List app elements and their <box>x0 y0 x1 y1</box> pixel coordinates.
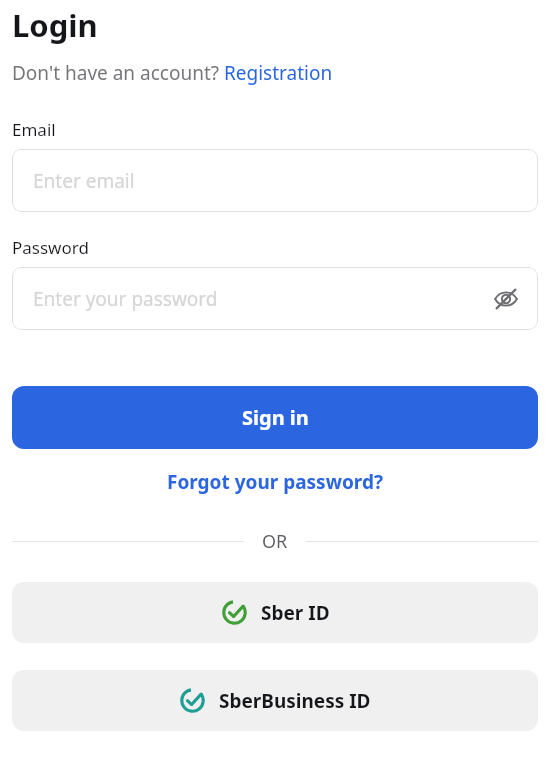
button[interactable]: Forgot your password? <box>12 465 538 499</box>
button[interactable]: Registration <box>224 60 333 86</box>
staticText: Forgot your password? <box>167 469 383 495</box>
staticText: OR <box>262 529 288 554</box>
staticText: Password <box>12 236 89 259</box>
staticText: Don't have an account? <box>12 60 224 86</box>
staticText: Enter your password <box>33 286 218 312</box>
button[interactable]: SberBusiness ID <box>12 670 538 731</box>
button[interactable]: Show password <box>488 281 524 317</box>
staticText: Email <box>12 118 56 141</box>
button[interactable]: Enter your password <box>12 267 538 330</box>
staticText: Sber ID <box>261 600 330 626</box>
button[interactable]: Sber ID <box>12 582 538 643</box>
staticText: Registration <box>224 60 333 86</box>
staticText: SberBusiness ID <box>219 688 371 714</box>
staticText: Enter email <box>33 168 135 194</box>
button[interactable]: Enter email <box>12 149 538 212</box>
staticText: Login <box>12 4 98 46</box>
button[interactable]: Sign in <box>12 386 538 449</box>
staticText: Sign in <box>242 404 309 431</box>
